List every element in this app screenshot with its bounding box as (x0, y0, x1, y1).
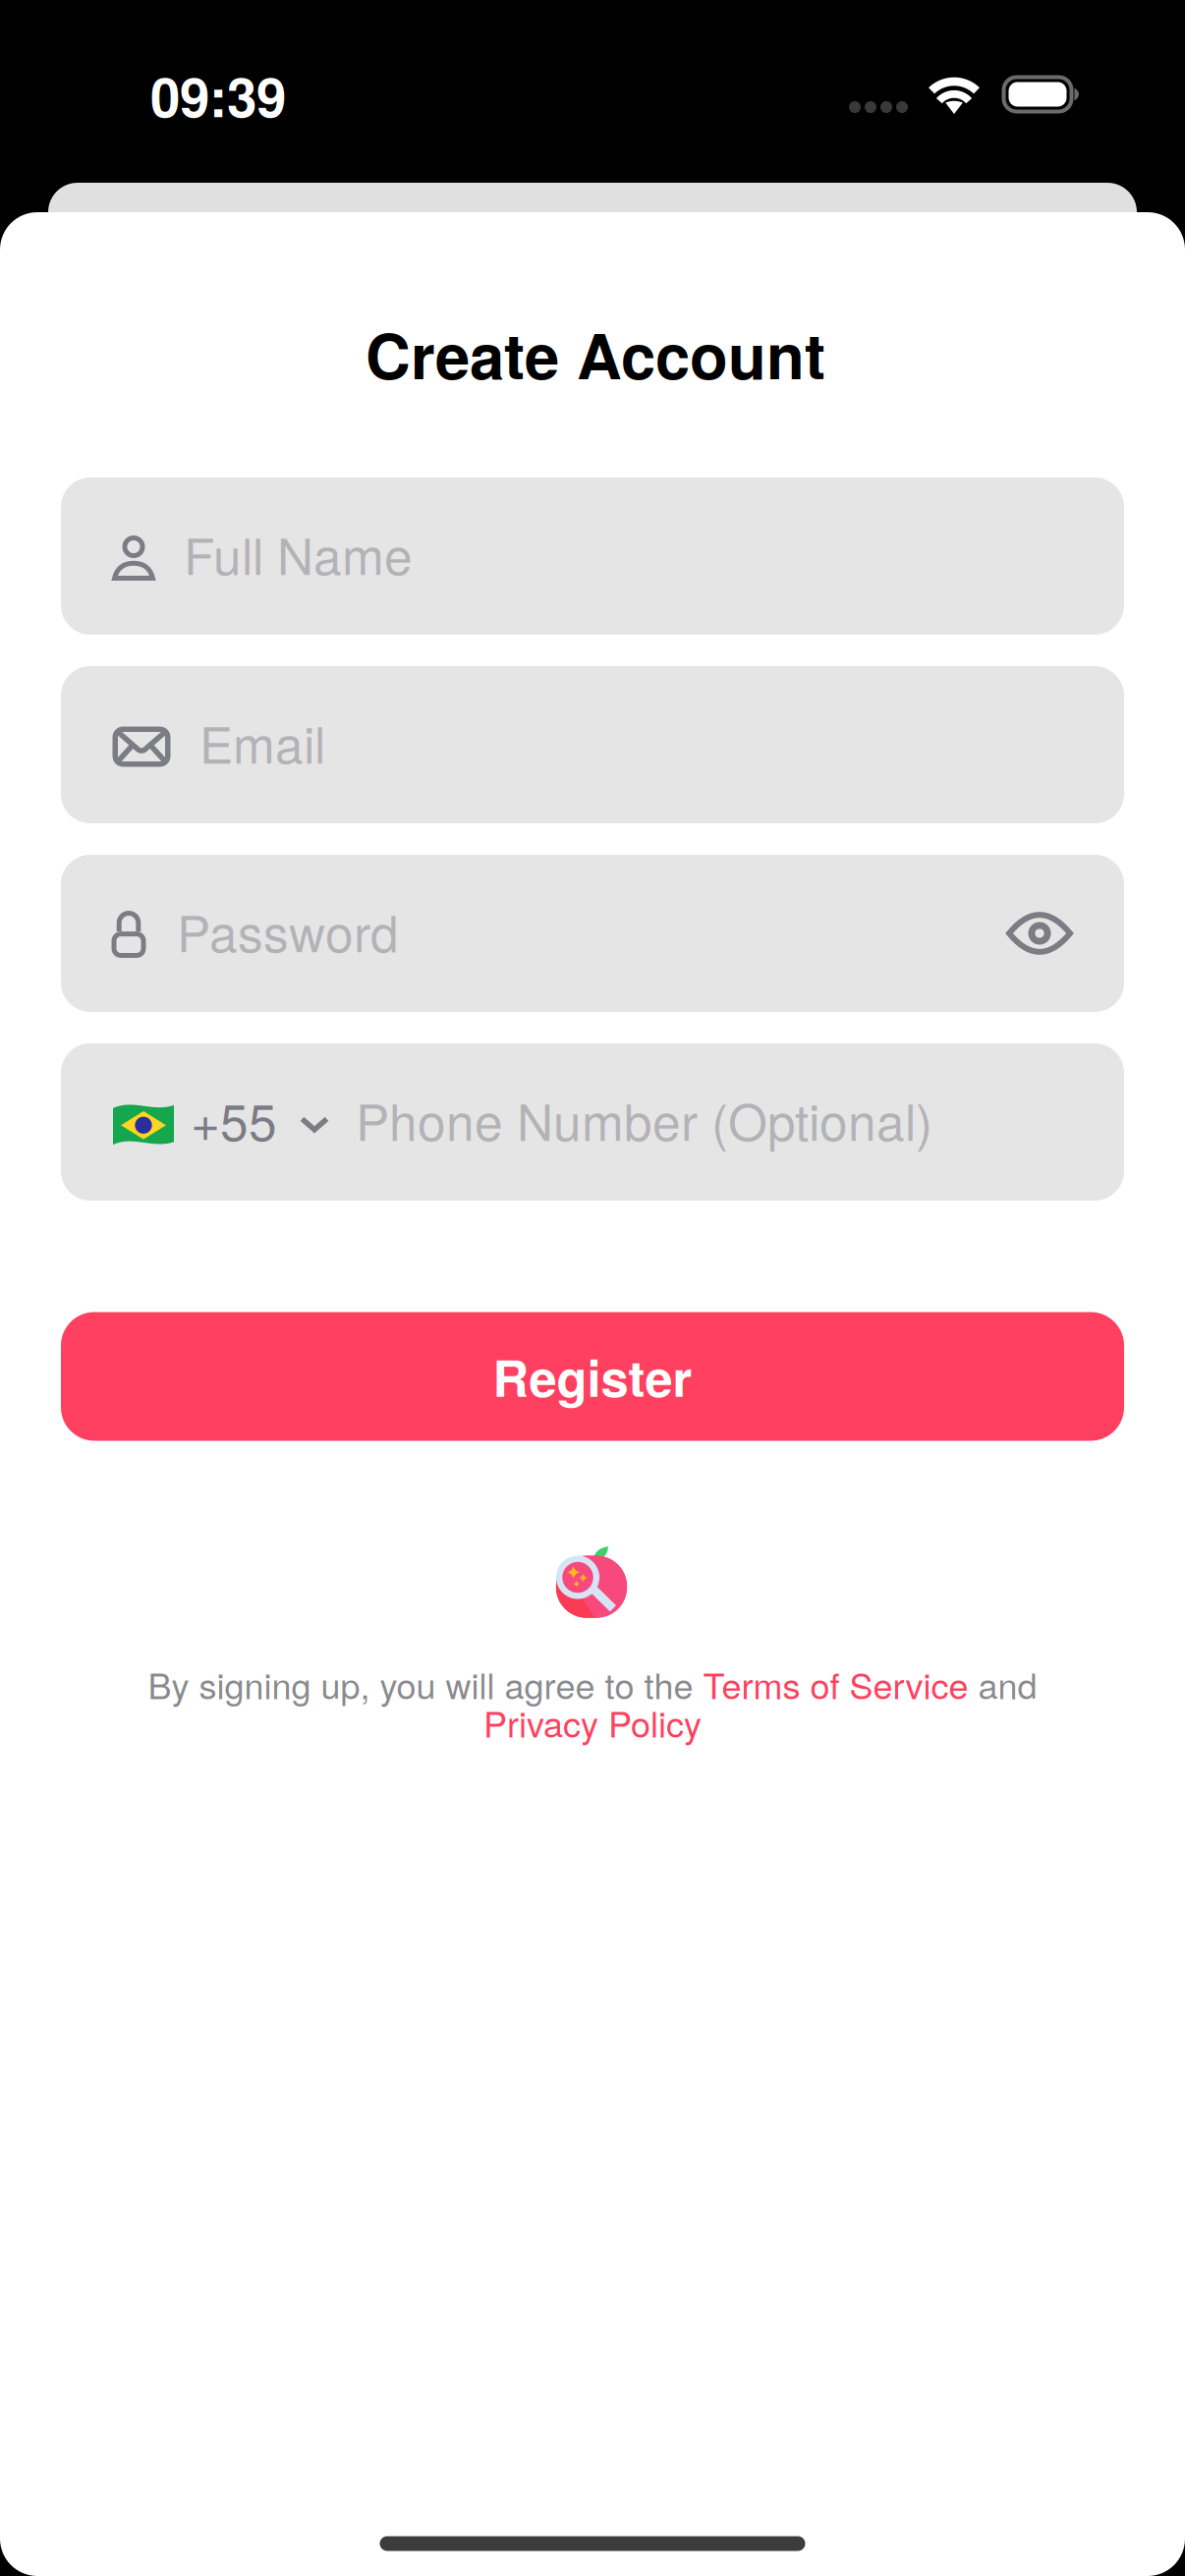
staticText: Email (199, 706, 325, 778)
staticText: 09:39 (150, 57, 286, 134)
button[interactable]: Email (61, 666, 1124, 823)
staticText: and (968, 1659, 1037, 1709)
button[interactable]: Password (61, 855, 1124, 1012)
staticText: Full Name (184, 517, 413, 589)
staticText: Register (493, 1341, 692, 1412)
button[interactable]: Privacy Policy (396, 1698, 789, 1747)
button[interactable]: Terms of Service (703, 1659, 968, 1709)
button[interactable]: Register (61, 1312, 1124, 1441)
button[interactable]: Full Name (61, 477, 1124, 635)
staticText: +55 (191, 1083, 277, 1155)
staticText: Terms of Service (703, 1659, 968, 1709)
staticText: Password (177, 894, 399, 966)
staticText: Phone Number (Optional) (356, 1083, 932, 1155)
staticText: By signing up, you will agree to the (148, 1659, 703, 1709)
button[interactable]: +55 (61, 1043, 1124, 1201)
button[interactable]: Show password (976, 855, 1103, 1012)
staticText: Privacy Policy (483, 1697, 702, 1748)
staticText: Create Account (366, 309, 825, 398)
